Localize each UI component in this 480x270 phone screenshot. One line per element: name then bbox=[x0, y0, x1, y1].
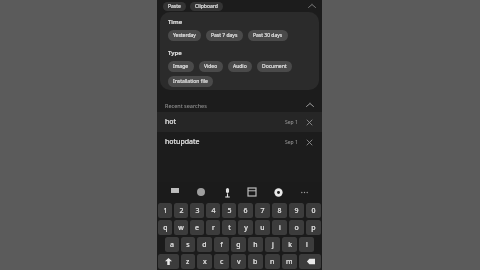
staticText: w bbox=[178, 223, 184, 233]
button[interactable]: More options bbox=[296, 184, 312, 200]
staticText: 1 bbox=[163, 206, 168, 216]
button[interactable]: n bbox=[265, 254, 280, 269]
staticText: 5 bbox=[227, 206, 232, 216]
staticText: y bbox=[244, 223, 248, 233]
button[interactable]: Voice input bbox=[219, 184, 235, 200]
button[interactable]: g bbox=[231, 237, 246, 252]
button[interactable]: e bbox=[190, 220, 204, 235]
button[interactable]: s bbox=[181, 237, 195, 252]
staticText: Past 30 days bbox=[253, 32, 283, 39]
staticText: k bbox=[288, 240, 292, 250]
button[interactable]: Settings bbox=[270, 184, 286, 200]
button[interactable]: Backspace bbox=[299, 254, 321, 269]
staticText: s bbox=[186, 240, 190, 250]
button[interactable]: u bbox=[255, 220, 270, 235]
button[interactable]: Document bbox=[257, 61, 292, 72]
button[interactable]: Sticker bbox=[193, 184, 209, 200]
staticText: Sep 1 bbox=[285, 119, 298, 126]
staticText: hot bbox=[165, 117, 177, 127]
button[interactable]: 5 bbox=[222, 203, 236, 218]
button[interactable]: Shift bbox=[158, 254, 179, 269]
button[interactable]: b bbox=[248, 254, 263, 269]
staticText: h bbox=[253, 240, 258, 250]
button[interactable]: 2 bbox=[174, 203, 188, 218]
button[interactable]: o bbox=[289, 220, 304, 235]
button[interactable]: 0 bbox=[306, 203, 321, 218]
staticText: Yesterday bbox=[173, 32, 196, 39]
button[interactable]: t bbox=[222, 220, 236, 235]
button[interactable]: f bbox=[214, 237, 229, 252]
button[interactable]: k bbox=[282, 237, 297, 252]
staticText: d bbox=[202, 240, 207, 250]
button[interactable]: Remove bbox=[304, 137, 314, 147]
button[interactable]: Audio bbox=[228, 61, 252, 72]
staticText: 0 bbox=[311, 206, 316, 216]
staticText: o bbox=[294, 223, 299, 233]
button[interactable]: Yesterday bbox=[168, 30, 201, 41]
button[interactable]: r bbox=[206, 220, 220, 235]
button[interactable]: Collapse bbox=[305, 0, 319, 12]
staticText: g bbox=[236, 240, 241, 250]
button[interactable]: 9 bbox=[289, 203, 304, 218]
staticText: Sep 1 bbox=[285, 139, 298, 146]
staticText: q bbox=[163, 223, 168, 233]
staticText: Time bbox=[168, 18, 183, 26]
staticText: Clipboard bbox=[195, 3, 218, 10]
staticText: l bbox=[306, 240, 308, 250]
button[interactable]: Clipboard bbox=[167, 184, 183, 200]
button[interactable]: hot bbox=[157, 112, 322, 132]
button[interactable]: l bbox=[299, 237, 314, 252]
button[interactable]: m bbox=[282, 254, 297, 269]
staticText: 6 bbox=[243, 206, 248, 216]
staticText: t bbox=[228, 223, 231, 233]
button[interactable]: Video bbox=[199, 61, 223, 72]
staticText: Recent searches bbox=[165, 102, 207, 109]
staticText: Image bbox=[173, 63, 189, 70]
button[interactable]: z bbox=[181, 254, 195, 269]
staticText: 4 bbox=[211, 206, 216, 216]
staticText: Installation file bbox=[173, 78, 208, 85]
button[interactable]: j bbox=[265, 237, 280, 252]
staticText: e bbox=[195, 223, 199, 233]
button[interactable]: Past 7 days bbox=[206, 30, 243, 41]
button[interactable]: Installation file bbox=[168, 76, 213, 87]
button[interactable]: 6 bbox=[238, 203, 253, 218]
button[interactable]: 4 bbox=[206, 203, 220, 218]
staticText: Document bbox=[262, 63, 287, 70]
button[interactable]: q bbox=[158, 220, 172, 235]
button[interactable]: d bbox=[197, 237, 212, 252]
staticText: f bbox=[220, 240, 223, 250]
staticText: z bbox=[186, 257, 190, 267]
button[interactable]: Clipboard bbox=[190, 2, 223, 11]
button[interactable]: hotupdate bbox=[157, 132, 322, 152]
button[interactable]: i bbox=[272, 220, 287, 235]
staticText: i bbox=[279, 223, 281, 233]
staticText: x bbox=[203, 257, 207, 267]
button[interactable]: Recent searches bbox=[165, 98, 314, 112]
button[interactable]: Translate bbox=[244, 184, 260, 200]
button[interactable]: y bbox=[238, 220, 253, 235]
staticText: 3 bbox=[195, 206, 200, 216]
button[interactable]: v bbox=[231, 254, 246, 269]
staticText: c bbox=[220, 257, 224, 267]
button[interactable]: Remove bbox=[304, 117, 314, 127]
button[interactable]: p bbox=[306, 220, 321, 235]
button[interactable]: Past 30 days bbox=[248, 30, 288, 41]
button[interactable]: w bbox=[174, 220, 188, 235]
staticText: b bbox=[253, 257, 258, 267]
button[interactable]: 1 bbox=[158, 203, 172, 218]
button[interactable]: a bbox=[165, 237, 179, 252]
button[interactable]: Paste bbox=[163, 2, 186, 11]
button[interactable]: 7 bbox=[255, 203, 270, 218]
button[interactable]: h bbox=[248, 237, 263, 252]
staticText: u bbox=[260, 223, 265, 233]
staticText: a bbox=[170, 240, 174, 250]
button[interactable]: x bbox=[197, 254, 212, 269]
button[interactable]: Image bbox=[168, 61, 194, 72]
staticText: v bbox=[237, 257, 241, 267]
staticText: Paste bbox=[168, 3, 181, 10]
staticText: n bbox=[270, 257, 275, 267]
button[interactable]: 8 bbox=[272, 203, 287, 218]
button[interactable]: 3 bbox=[190, 203, 204, 218]
button[interactable]: c bbox=[214, 254, 229, 269]
